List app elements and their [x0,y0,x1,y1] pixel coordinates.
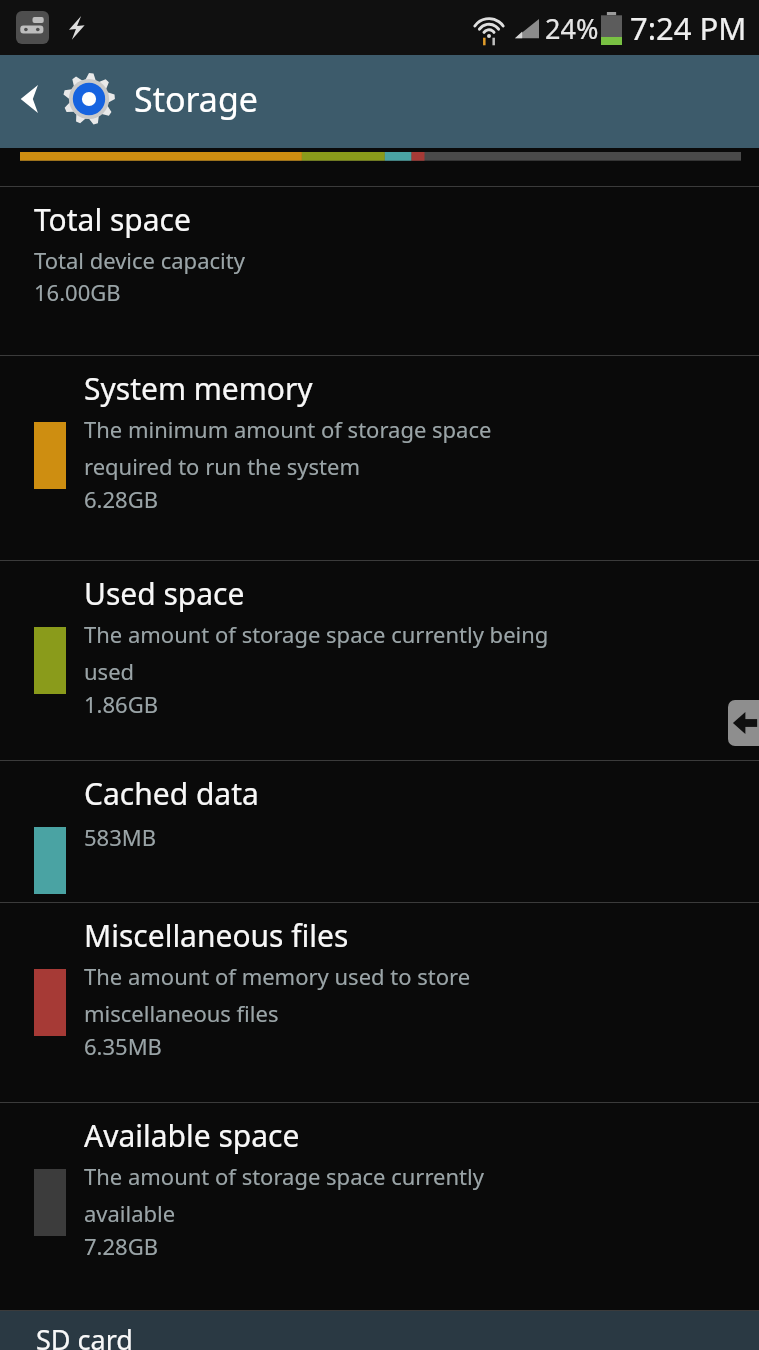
button[interactable]: Available space [0,1103,759,1310]
button[interactable]: Cached data [0,761,759,902]
staticText: Total device capacity [34,245,245,275]
staticText: Miscellaneous files [84,915,349,956]
button[interactable]: System memory [0,356,759,560]
staticText: 6.28GB [84,484,158,514]
staticText: 1.86GB [84,689,158,719]
staticText: The amount of storage space currently be… [84,619,549,687]
staticText: Available space [84,1115,300,1156]
staticText: 6.35MB [84,1031,162,1061]
button[interactable]: Used space [0,561,759,760]
staticText: The amount of memory used to store misce… [84,961,471,1029]
staticText: Used space [84,573,245,614]
staticText: 583MB [84,822,157,852]
staticText: System memory [84,368,313,409]
staticText: 16.00GB [34,277,121,307]
button[interactable]: Back [0,70,58,128]
staticText: SD card [36,1321,133,1350]
button[interactable]: Open panel [728,700,759,746]
staticText: 7:24 PM [630,7,747,49]
staticText: 7.28GB [84,1231,158,1261]
staticText: The amount of storage space currently av… [84,1161,484,1229]
staticText: Total space [34,199,191,240]
staticText: Storage [134,76,259,122]
staticText: 24% [545,10,599,47]
staticText: Cached data [84,773,259,814]
button[interactable]: Total space [0,187,759,355]
button[interactable]: Miscellaneous files [0,903,759,1102]
staticText: The minimum amount of storage space requ… [84,414,492,482]
